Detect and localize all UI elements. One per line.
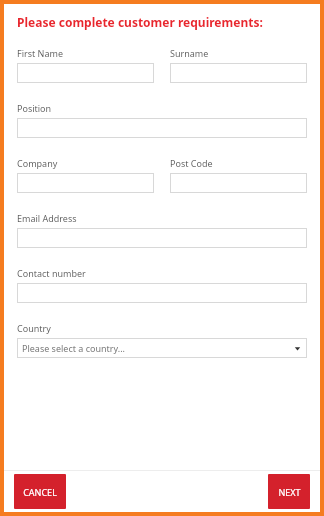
button[interactable]: [17, 63, 154, 83]
staticText: Please select a country...: [22, 342, 126, 354]
staticText: Surname: [170, 47, 209, 59]
button[interactable]: CANCEL: [14, 474, 66, 509]
staticText: Position: [17, 102, 52, 114]
staticText: Please complete customer requirements:: [17, 14, 263, 30]
button[interactable]: [170, 63, 307, 83]
button[interactable]: [17, 283, 307, 303]
staticText: NEXT: [278, 486, 301, 498]
staticText: Contact number: [17, 267, 86, 279]
staticText: CANCEL: [23, 486, 57, 498]
button[interactable]: [17, 118, 307, 138]
staticText: Company: [17, 157, 58, 169]
button[interactable]: [17, 173, 154, 193]
staticText: First Name: [17, 47, 63, 59]
staticText: Email Address: [17, 212, 77, 224]
button[interactable]: Please select a country...: [17, 338, 307, 358]
button[interactable]: [17, 228, 307, 248]
staticText: Post Code: [170, 157, 213, 169]
staticText: Country: [17, 322, 51, 334]
button[interactable]: NEXT: [268, 474, 310, 509]
button[interactable]: [170, 173, 307, 193]
